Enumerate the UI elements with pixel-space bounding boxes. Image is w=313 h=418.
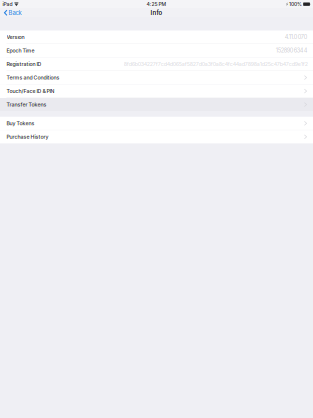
staticText: Registration ID bbox=[6, 61, 41, 67]
staticText: Buy Tokens bbox=[6, 120, 34, 126]
button[interactable]: Terms and Conditions bbox=[0, 71, 313, 84]
staticText: 4:25 PM bbox=[146, 1, 166, 7]
button[interactable]: Transfer Tokens bbox=[0, 98, 313, 111]
button[interactable]: Buy Tokens bbox=[0, 117, 313, 130]
staticText: iPad bbox=[3, 1, 13, 7]
staticText: Purchase History bbox=[6, 134, 48, 140]
staticText: Info bbox=[150, 9, 162, 16]
button[interactable]: Touch/Face ID & PIN bbox=[0, 84, 313, 98]
staticText: 100% bbox=[289, 1, 302, 7]
staticText: Transfer Tokens bbox=[6, 101, 46, 108]
button[interactable]: Back bbox=[0, 8, 21, 17]
staticText: 1528906344 bbox=[276, 47, 308, 54]
staticText: Back bbox=[8, 9, 21, 16]
staticText: 4.11.0070 bbox=[285, 34, 308, 40]
staticText: 8fd6b034227f7cd4d065af5827d0a3f0a8c4fc44… bbox=[124, 61, 308, 67]
staticText: Epoch Time bbox=[6, 47, 34, 54]
staticText: Terms and Conditions bbox=[6, 74, 59, 81]
button[interactable]: Purchase History bbox=[0, 130, 313, 143]
staticText: Touch/Face ID & PIN bbox=[6, 88, 54, 94]
staticText: Version bbox=[6, 34, 24, 40]
